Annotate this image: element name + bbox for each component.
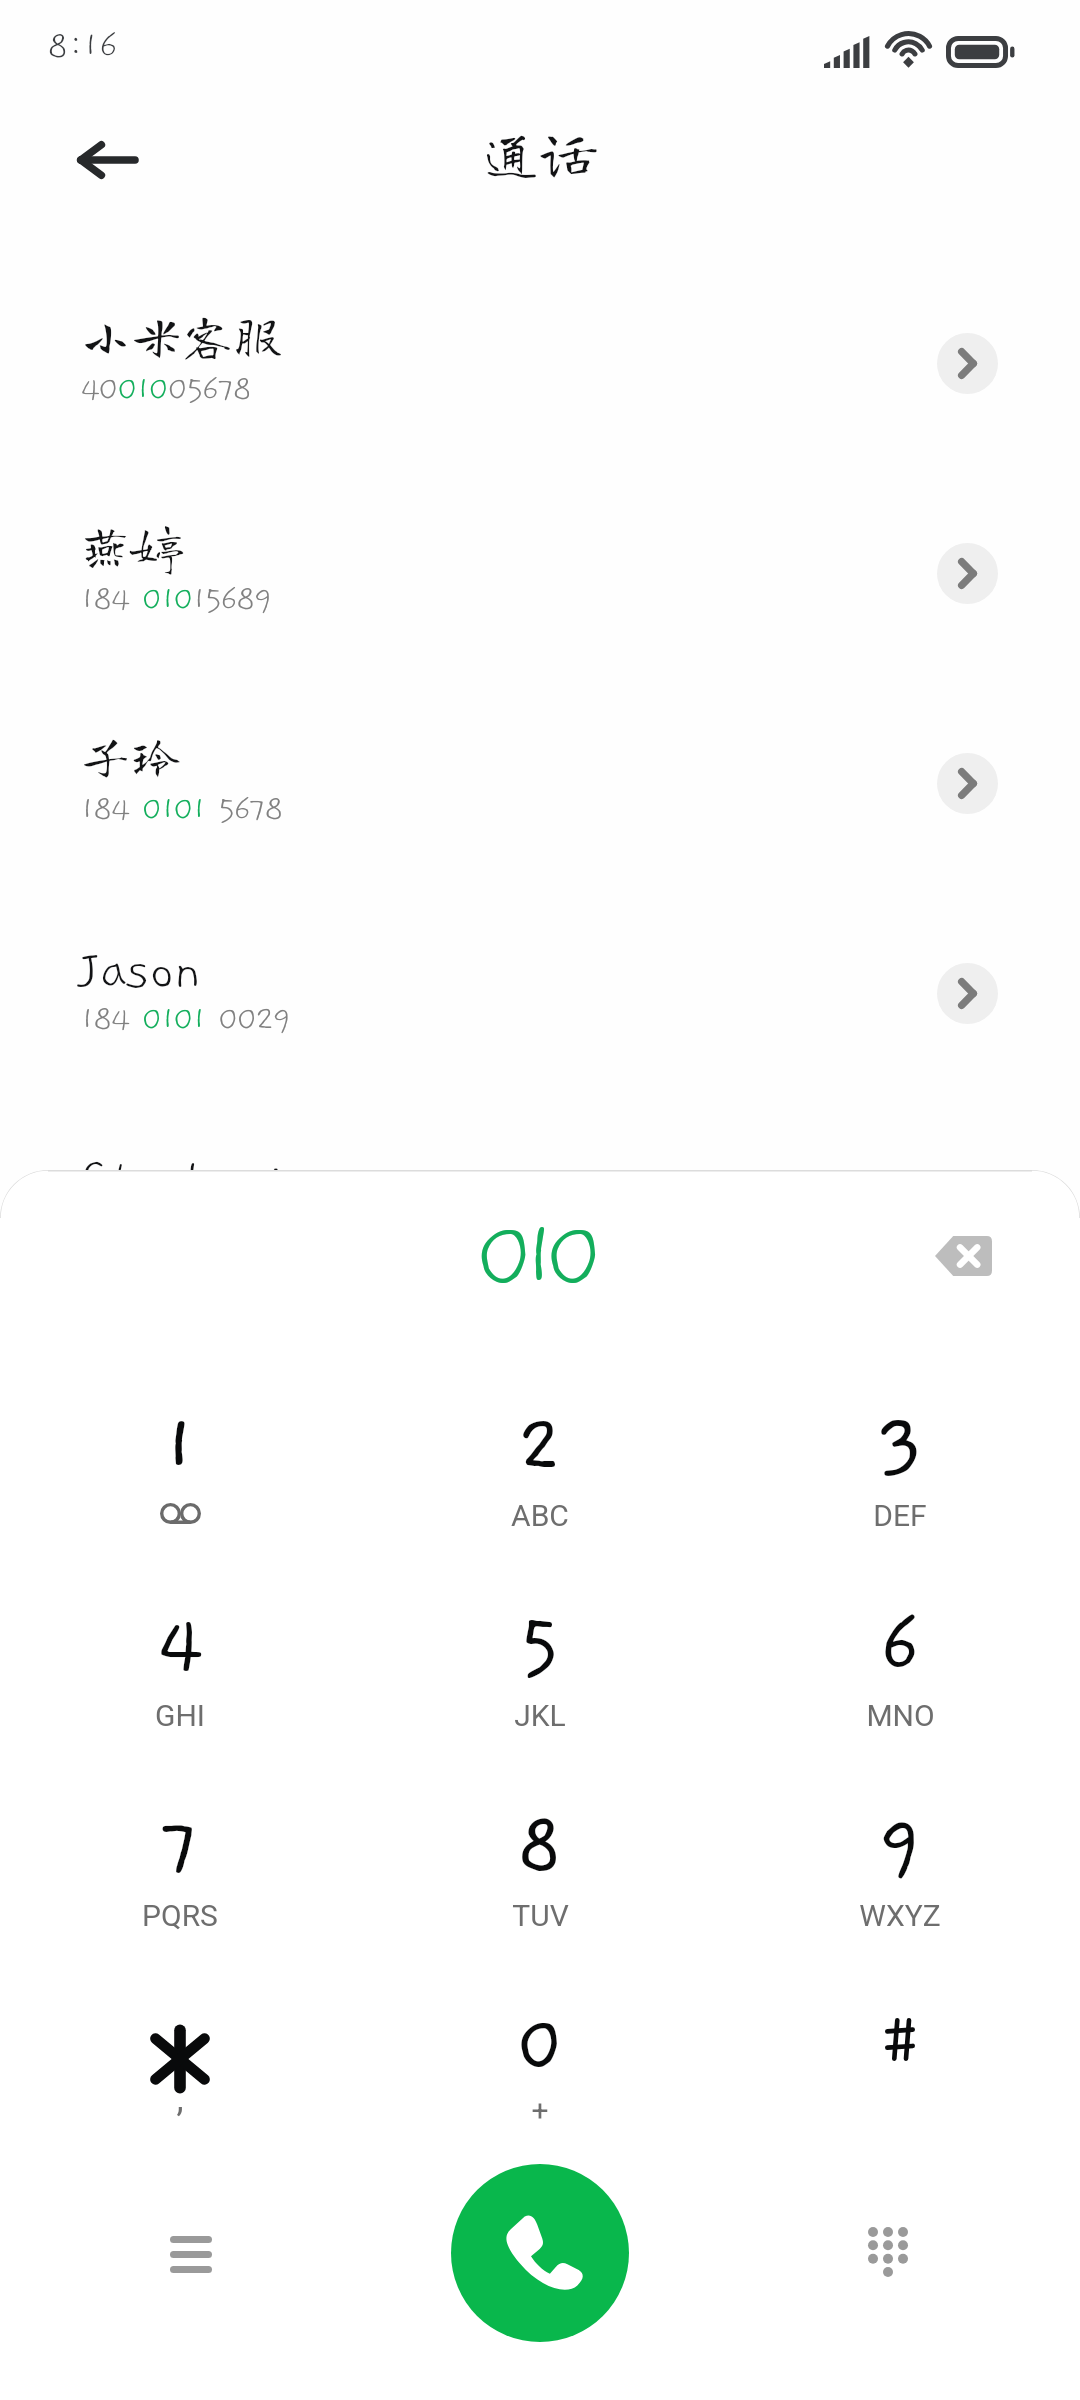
staticText: 8 xyxy=(516,1802,564,1890)
button[interactable]: 7 xyxy=(0,1747,360,1947)
button[interactable]: 5 xyxy=(360,1547,720,1747)
staticText: + xyxy=(531,2093,549,2128)
staticText: 4001005678 xyxy=(80,371,251,408)
staticText: JKL xyxy=(514,1698,566,1733)
staticText: Jason xyxy=(80,942,202,1000)
staticText: WXYZ xyxy=(859,1898,941,1933)
button[interactable]: 2 xyxy=(360,1347,720,1547)
button[interactable]: Call log xyxy=(136,2199,246,2309)
staticText: 1 xyxy=(162,1402,198,1490)
staticText: 6 xyxy=(879,1602,922,1690)
button[interactable]: Open contact details xyxy=(937,333,998,394)
staticText: 184 0101 5678 xyxy=(80,791,282,828)
staticText: 7 xyxy=(159,1802,201,1890)
staticText: 184 0101 0029 xyxy=(80,1001,289,1038)
staticText: 4 xyxy=(156,1602,205,1690)
staticText: Stephanie xyxy=(80,1152,311,1210)
button[interactable]: 1 xyxy=(0,1347,360,1547)
button[interactable]: 0 xyxy=(360,1947,720,2147)
button[interactable]: Pound xyxy=(720,1947,1080,2147)
button[interactable]: 3 xyxy=(720,1347,1080,1547)
staticText: 子玲 xyxy=(80,729,183,780)
button[interactable]: Call xyxy=(451,2164,629,2342)
staticText: DEF xyxy=(873,1498,927,1533)
staticText: 0 xyxy=(515,2002,566,2090)
button[interactable]: Delete xyxy=(920,1213,1006,1299)
staticText: 010 xyxy=(474,1203,588,1311)
button[interactable]: 子玲 xyxy=(0,678,1080,888)
staticText: TUV xyxy=(512,1898,569,1933)
button[interactable]: 4 xyxy=(0,1547,360,1747)
staticText: 2 xyxy=(517,1402,563,1490)
staticText: ABC xyxy=(511,1498,569,1533)
button[interactable]: Open contact details xyxy=(937,543,998,604)
staticText: PQRS xyxy=(142,1898,218,1933)
staticText: 184 01015689 xyxy=(80,581,271,618)
button[interactable]: 8 xyxy=(360,1747,720,1947)
staticText: 燕婷 xyxy=(80,519,183,570)
staticText: 3 xyxy=(877,1402,924,1490)
button[interactable]: Back xyxy=(56,110,156,210)
button[interactable]: 9 xyxy=(720,1747,1080,1947)
button[interactable]: Open contact details xyxy=(937,753,998,814)
staticText: 8:16 xyxy=(47,26,119,66)
button[interactable]: Star xyxy=(0,1947,360,2147)
button[interactable]: 小米客服 xyxy=(0,258,1080,468)
button[interactable]: Hide dialpad xyxy=(833,2197,943,2307)
staticText: GHI xyxy=(155,1698,205,1733)
button[interactable]: 6 xyxy=(720,1547,1080,1747)
staticText: 5 xyxy=(518,1602,562,1690)
button[interactable]: 燕婷 xyxy=(0,468,1080,678)
staticText: 9 xyxy=(877,1802,923,1890)
staticText: MNO xyxy=(866,1698,935,1733)
staticText: 通话 xyxy=(483,124,597,181)
staticText: 小米客服 xyxy=(80,309,285,360)
button[interactable]: Open contact details xyxy=(937,963,998,1024)
button[interactable]: Stephanie xyxy=(0,1098,1080,1308)
button[interactable]: Jason xyxy=(0,888,1080,1098)
staticText: , xyxy=(176,2078,184,2120)
